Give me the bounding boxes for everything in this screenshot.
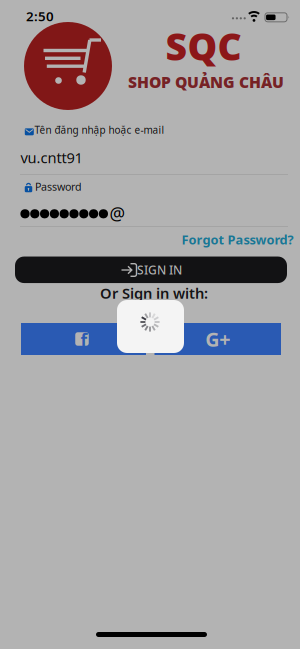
button[interactable]: Username or e-mail [12,144,288,174]
staticText: G+ [205,326,230,352]
staticText: SHOP QUẢNG CHÂU [128,71,284,93]
button[interactable]: Sign in with Facebook [21,323,146,355]
button[interactable]: Password [12,200,288,226]
staticText: SQC [165,21,241,71]
button[interactable]: SIGN IN [15,257,287,283]
staticText: @ [109,202,125,225]
staticText: Or Sign in with: [100,283,208,303]
staticText: Password [35,179,82,194]
button[interactable]: Forgot Password? [181,231,293,248]
button[interactable]: Sign in with Google [154,323,281,355]
staticText: SIGN IN [137,262,182,278]
staticText: vu.cntt91 [20,148,82,167]
staticText: Forgot Password? [181,231,293,248]
staticText: f [80,328,87,351]
staticText: 2:50 [26,7,54,25]
staticText: Tên đăng nhập hoặc e-mail [34,123,164,137]
